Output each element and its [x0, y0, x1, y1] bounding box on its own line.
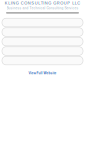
button[interactable]	[2, 37, 83, 46]
staticText: View Full Website	[28, 71, 56, 75]
button[interactable]	[2, 18, 83, 27]
staticText: Business and Technical Consulting Servic…	[6, 6, 78, 10]
button[interactable]: View Full Website	[28, 71, 56, 75]
staticText: KLING CONSULTING GROUP LLC	[5, 1, 80, 5]
button[interactable]	[2, 56, 83, 65]
